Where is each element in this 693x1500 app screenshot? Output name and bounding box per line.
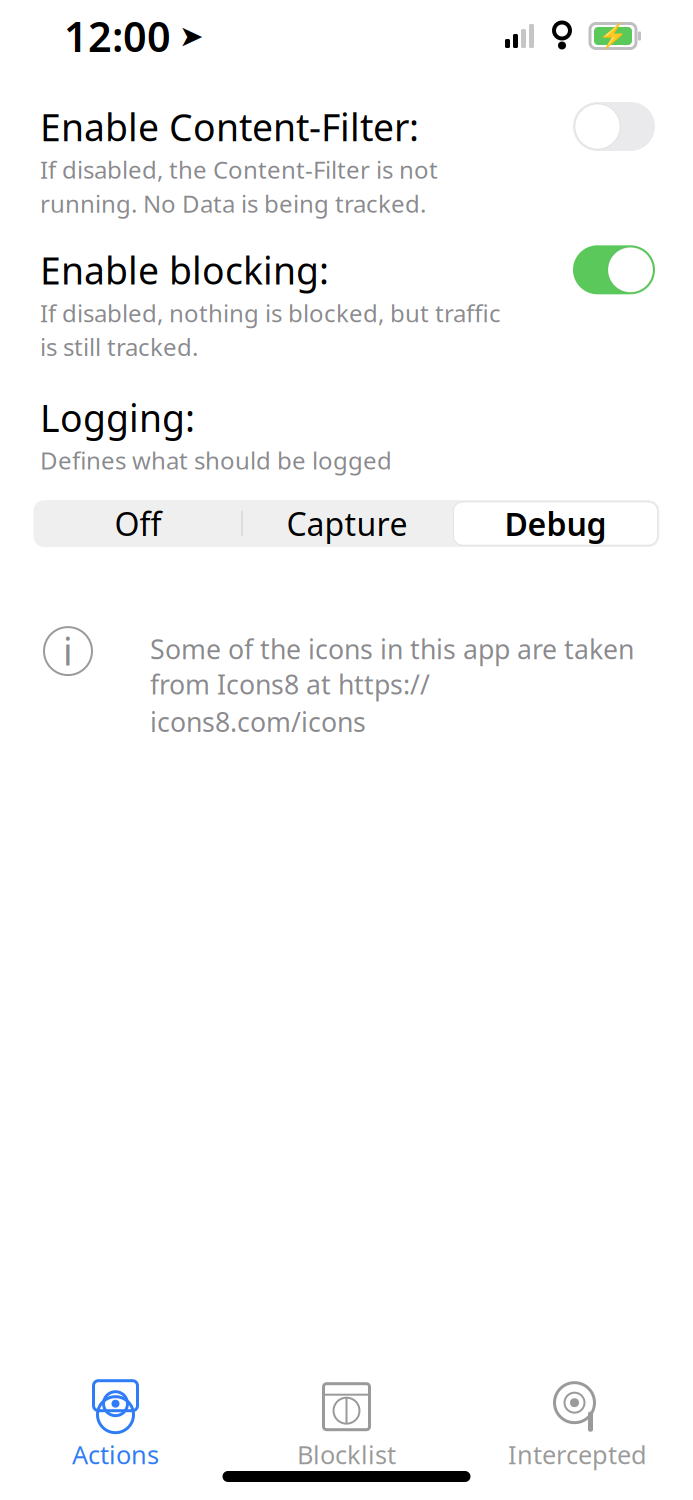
staticText: Enable blocking:	[40, 245, 329, 295]
staticText: Debug	[504, 502, 606, 545]
button[interactable]: Off	[33, 500, 242, 547]
staticText: ➤	[179, 19, 204, 53]
button[interactable]: Enable Content-Filter	[573, 102, 655, 151]
staticText: ⚡	[598, 22, 628, 50]
staticText: Capture	[286, 502, 407, 545]
staticText: running. No Data is being tracked.	[40, 187, 426, 219]
staticText: Some of the icons in this app are taken …	[150, 631, 634, 702]
button[interactable]: Capture	[242, 500, 451, 547]
staticText: Actions	[72, 1438, 159, 1471]
staticText: Intercepted	[508, 1438, 647, 1471]
button[interactable]: Intercepted	[462, 1381, 693, 1471]
staticText: is still tracked.	[40, 331, 198, 363]
staticText: Enable Content-Filter:	[40, 102, 419, 152]
staticText: Off	[114, 502, 161, 545]
staticText: i	[63, 626, 73, 676]
button[interactable]: Actions	[0, 1381, 231, 1471]
staticText: Blocklist	[297, 1438, 396, 1471]
staticText: If disabled, nothing is blocked, but tra…	[40, 297, 501, 329]
button[interactable]: Enable blocking	[573, 245, 655, 294]
staticText: 12:00	[64, 9, 171, 63]
button[interactable]: Debug	[451, 500, 659, 547]
button[interactable]: Blocklist	[231, 1381, 462, 1471]
staticText: Logging:	[40, 393, 195, 442]
staticText: Defines what should be logged	[40, 444, 392, 476]
staticText: If disabled, the Content-Filter is not	[40, 154, 438, 185]
staticText: icons8.com/icons	[150, 704, 366, 739]
